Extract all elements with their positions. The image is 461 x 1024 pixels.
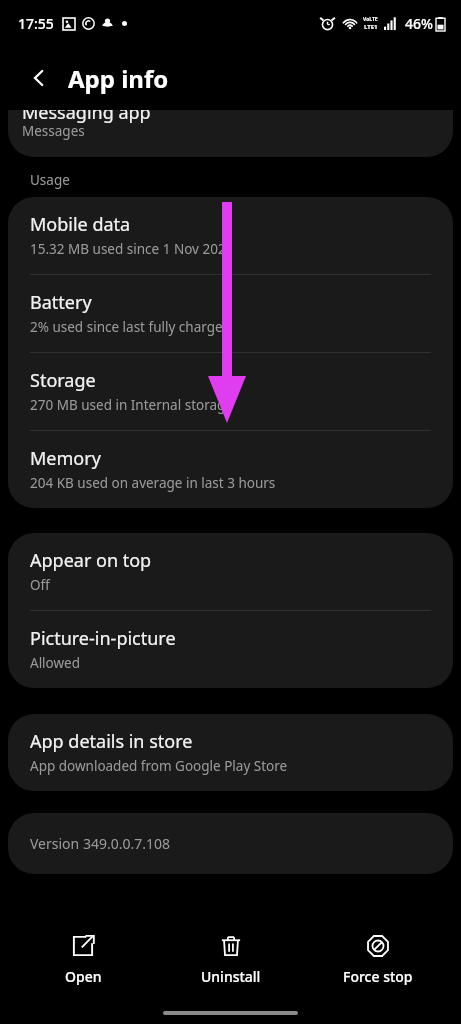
staticText: Off xyxy=(30,576,50,594)
staticText: Storage xyxy=(30,368,96,393)
staticText: Mobile data xyxy=(30,212,131,237)
staticText: Allowed xyxy=(30,654,81,672)
staticText: Uninstall xyxy=(201,967,261,986)
staticText: App downloaded from Google Play Store xyxy=(30,757,288,775)
button[interactable]: Back xyxy=(18,57,60,99)
button[interactable]: Memory xyxy=(8,431,453,508)
staticText: Messaging app xyxy=(22,110,151,125)
staticText: Usage xyxy=(30,171,70,189)
button[interactable]: Storage xyxy=(8,353,453,430)
button[interactable]: Uninstall xyxy=(166,928,296,992)
staticText: Open xyxy=(65,967,102,986)
staticText: 2% used since last fully charged xyxy=(30,318,231,336)
button[interactable]: Force stop xyxy=(313,928,443,992)
staticText: 17:55 xyxy=(18,14,54,33)
staticText: 204 KB used on average in last 3 hours xyxy=(30,474,276,492)
staticText: App details in store xyxy=(30,729,193,754)
button[interactable]: Appear on top xyxy=(8,533,453,610)
staticText: 270 MB used in Internal storage xyxy=(30,396,233,414)
staticText: 46% xyxy=(405,14,433,33)
staticText: 15.32 MB used since 1 Nov 2021 xyxy=(30,240,234,258)
staticText: VoLTE xyxy=(363,16,378,23)
button[interactable]: Battery xyxy=(8,275,453,352)
button[interactable]: Open xyxy=(18,928,148,992)
staticText: App info xyxy=(68,62,169,95)
staticText: Version 349.0.0.7.108 xyxy=(30,834,170,853)
staticText: LTE1 xyxy=(364,23,378,31)
button[interactable]: Picture-in-picture xyxy=(8,611,453,688)
button[interactable]: Messaging app xyxy=(8,110,453,157)
button[interactable]: Mobile data xyxy=(8,197,453,274)
staticText: Picture-in-picture xyxy=(30,626,176,651)
button[interactable]: App details in store xyxy=(8,714,453,791)
staticText: Memory xyxy=(30,446,101,471)
staticText: Messages xyxy=(22,122,85,140)
staticText: Force stop xyxy=(343,967,413,986)
staticText: Battery xyxy=(30,290,92,315)
staticText: Appear on top xyxy=(30,548,152,573)
